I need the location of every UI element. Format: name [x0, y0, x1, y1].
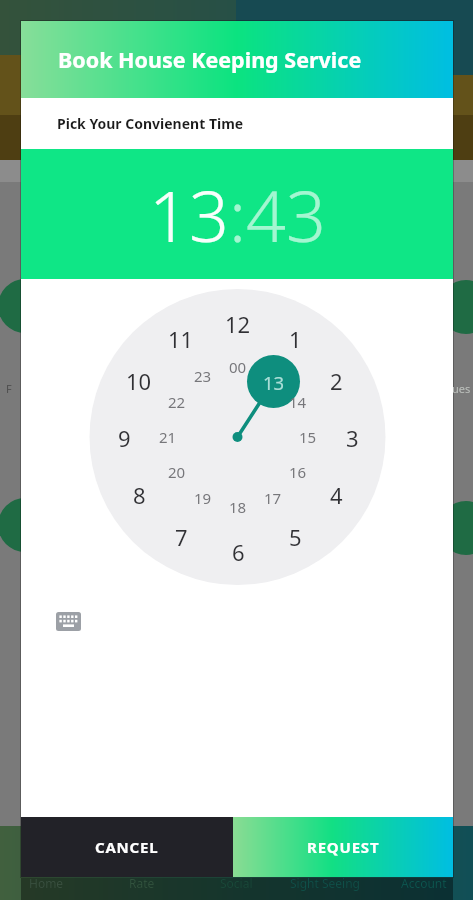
staticText: Home	[29, 875, 64, 891]
staticText: 2	[330, 366, 343, 394]
staticText: Book House Keeping Service	[58, 45, 362, 74]
staticText: F	[6, 381, 12, 396]
staticText: 11	[168, 324, 194, 352]
staticText: Account	[401, 875, 447, 891]
staticText: 1	[289, 324, 302, 352]
staticText: Pick Your Convienent Time	[57, 114, 244, 133]
staticText: 4	[330, 480, 343, 508]
staticText: 21	[159, 427, 177, 447]
staticText: Sight Seeing	[290, 875, 360, 891]
staticText: CANCEL	[95, 837, 159, 857]
staticText: 17	[264, 488, 282, 508]
staticText: 10	[126, 366, 152, 394]
staticText: 15	[299, 427, 317, 447]
staticText: 00	[229, 357, 247, 377]
staticText: ues	[452, 381, 471, 396]
staticText: 7	[175, 522, 188, 550]
staticText: 14	[289, 392, 307, 412]
staticText: 8	[133, 480, 146, 508]
button[interactable]: REQUEST	[233, 817, 453, 877]
staticText: 6	[232, 537, 245, 565]
staticText: 9	[118, 423, 131, 451]
staticText: 16	[289, 462, 307, 482]
staticText: 13	[263, 370, 285, 395]
staticText: REQUEST	[307, 837, 380, 857]
staticText: 3	[346, 423, 359, 451]
staticText: 20	[168, 462, 186, 482]
staticText: 23	[194, 366, 212, 386]
staticText: Rate	[129, 875, 155, 891]
staticText: 19	[194, 488, 212, 508]
staticText: 13:43	[149, 167, 326, 262]
staticText: 18	[229, 497, 247, 517]
staticText: 12	[225, 309, 251, 337]
staticText: 5	[289, 522, 302, 550]
staticText: 22	[168, 392, 186, 412]
staticText: Social	[220, 875, 253, 891]
button[interactable]: CANCEL	[21, 817, 233, 877]
